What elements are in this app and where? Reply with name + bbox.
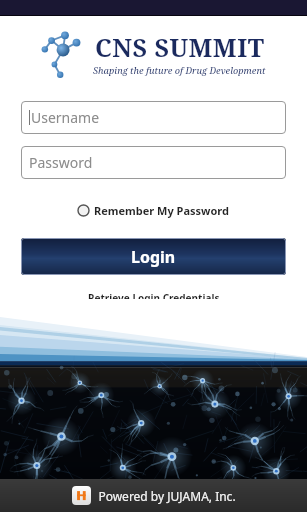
button[interactable]: Retrieve Login Credentials	[86, 289, 222, 307]
button[interactable]: Remember My Password	[75, 201, 232, 220]
button[interactable]: Username	[21, 101, 286, 134]
staticText: Shaping the future of Drug Development	[93, 64, 266, 76]
staticText: Username	[31, 108, 100, 127]
button[interactable]: Password	[21, 146, 286, 179]
staticText: CNS SUMMIT	[95, 30, 265, 64]
button[interactable]: Login	[21, 238, 286, 275]
staticText: Remember My Password	[94, 203, 230, 218]
staticText: Login	[131, 246, 176, 268]
staticText: Powered by JUJAMA, Inc.	[98, 488, 236, 504]
staticText: Password	[29, 153, 93, 172]
